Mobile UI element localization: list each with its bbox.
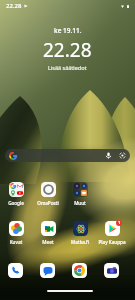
button[interactable]: Meet <box>32 221 64 246</box>
button[interactable]: Phone <box>8 263 23 278</box>
button[interactable]: Matka.fi <box>64 221 96 246</box>
button[interactable]: OmaPosti <box>32 182 64 207</box>
button[interactable]: Voice search <box>5 149 130 162</box>
staticText: 22.28 <box>43 37 92 63</box>
staticText: Matka.fi <box>64 239 96 245</box>
button[interactable]: Kuvat <box>0 221 32 246</box>
staticText: Meet <box>32 239 64 245</box>
staticText: Kuvat <box>0 239 32 245</box>
staticText: Play Kauppa <box>96 239 128 245</box>
other: Google Lens <box>119 152 126 159</box>
staticText: 1 <box>118 220 121 226</box>
button[interactable]: 1 <box>96 221 128 246</box>
button[interactable]: Google <box>0 182 32 207</box>
button[interactable]: Chrome <box>72 263 87 278</box>
button[interactable]: Muut <box>64 182 96 207</box>
staticText: 22.28 <box>6 2 22 10</box>
button[interactable]: Camera <box>104 263 119 278</box>
staticText: Muut <box>64 200 96 206</box>
other: Voice search <box>105 152 112 159</box>
staticText: Lisää säätiedot <box>48 64 87 71</box>
staticText: Google <box>0 200 32 206</box>
button[interactable]: Messages <box>40 263 55 278</box>
staticText: ke 19.11. <box>54 26 82 35</box>
staticText: OmaPosti <box>32 200 64 206</box>
